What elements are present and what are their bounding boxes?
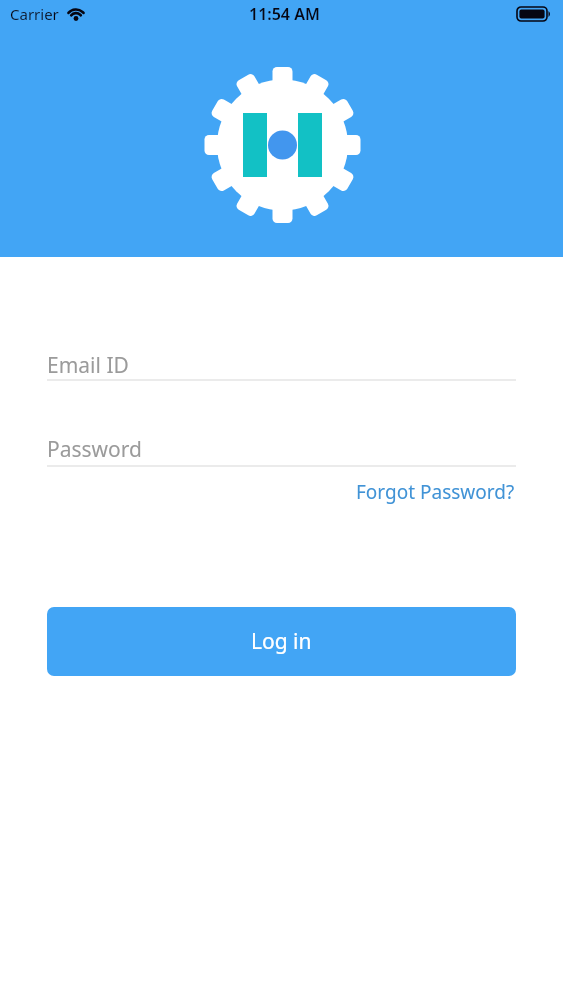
staticText: Forgot Password?	[356, 479, 515, 505]
button[interactable]: Log in	[47, 607, 516, 676]
button[interactable]: Email ID	[47, 348, 516, 381]
staticText: Log in	[251, 627, 312, 656]
button[interactable]: Forgot Password?	[356, 479, 515, 505]
staticText: 11:54 AM	[249, 3, 320, 25]
staticText: Carrier	[10, 4, 59, 24]
staticText: Email ID	[47, 351, 129, 380]
button[interactable]: Password	[47, 434, 516, 467]
staticText: Password	[47, 435, 142, 464]
